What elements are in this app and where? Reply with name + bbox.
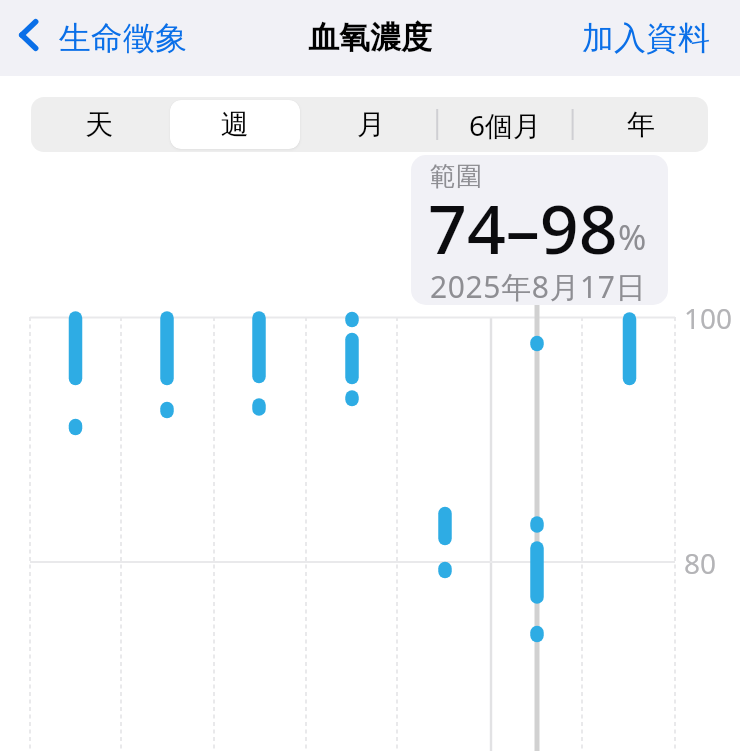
button[interactable]: Back to 生命徵象 [12, 13, 197, 63]
button[interactable]: 天 [34, 100, 164, 149]
button[interactable]: 月 [306, 100, 435, 149]
staticText: 月 [357, 107, 385, 142]
staticText: 100 [684, 299, 733, 337]
button[interactable]: 血氧濃度週圖表 [0, 160, 740, 751]
staticText: 週 [221, 107, 249, 142]
staticText: 74–98 [428, 181, 618, 274]
staticText: 年 [627, 107, 655, 142]
staticText: 6個月 [469, 106, 542, 144]
button[interactable]: 週 [170, 100, 300, 149]
button[interactable]: 年 [576, 100, 705, 149]
button[interactable]: 加入資料 [564, 6, 740, 70]
staticText: 2025年8月17日 [430, 266, 647, 305]
button[interactable]: 6個月 [441, 100, 570, 149]
staticText: 天 [85, 107, 113, 142]
button[interactable]: 範圍 [411, 155, 668, 305]
staticText: 範圍 [430, 160, 482, 193]
staticText: 生命徵象 [59, 18, 187, 58]
staticText: % [618, 214, 647, 260]
staticText: 80 [684, 544, 717, 582]
staticText: 血氧濃度 [308, 18, 432, 57]
